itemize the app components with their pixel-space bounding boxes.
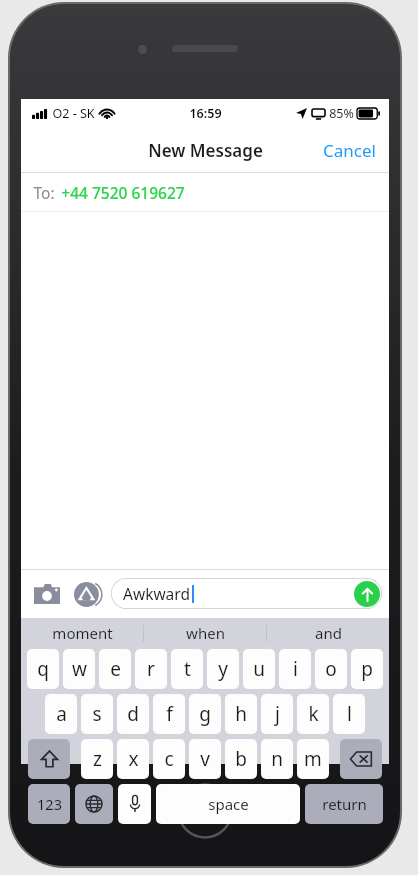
staticText: e	[110, 656, 121, 682]
staticText: l	[347, 701, 352, 727]
staticText: moment	[52, 623, 113, 643]
button[interactable]: w	[63, 649, 95, 689]
button[interactable]: d	[117, 694, 149, 734]
staticText: u	[253, 656, 265, 682]
staticText: Awkward	[123, 583, 190, 604]
button[interactable]: when	[144, 618, 266, 648]
button[interactable]: g	[189, 694, 221, 734]
button[interactable]: Backspace	[340, 739, 382, 779]
staticText: m	[304, 746, 322, 772]
staticText: c	[164, 746, 174, 772]
staticText: New Message	[148, 139, 263, 162]
staticText: d	[127, 701, 139, 727]
button[interactable]: k	[297, 694, 329, 734]
button[interactable]: Shift	[28, 739, 70, 779]
button[interactable]: j	[261, 694, 293, 734]
button[interactable]: space	[156, 784, 300, 824]
button[interactable]: b	[225, 739, 257, 779]
staticText: return	[322, 794, 367, 814]
staticText: 16:59	[189, 105, 222, 122]
staticText: 85%	[329, 105, 354, 122]
staticText: t	[184, 656, 191, 682]
button[interactable]: Emoji / language	[75, 784, 113, 824]
staticText: j	[275, 701, 280, 727]
staticText: g	[199, 701, 211, 727]
staticText: y	[218, 656, 228, 682]
staticText: f	[166, 701, 173, 727]
staticText: O2 - SK	[52, 105, 95, 122]
staticText: space	[208, 794, 249, 814]
staticText: x	[128, 746, 139, 772]
staticText: i	[293, 656, 298, 682]
staticText: 123	[37, 794, 62, 814]
button[interactable]: l	[333, 694, 365, 734]
staticText: To:	[33, 182, 55, 203]
button[interactable]: v	[189, 739, 221, 779]
button[interactable]: Send	[354, 581, 380, 607]
staticText: r	[147, 656, 155, 682]
button[interactable]: Cancel	[310, 129, 389, 172]
button[interactable]: p	[351, 649, 383, 689]
button[interactable]: x	[117, 739, 149, 779]
button[interactable]: App Store	[70, 577, 104, 611]
staticText: n	[271, 746, 283, 772]
button[interactable]: n	[261, 739, 293, 779]
staticText: w	[72, 656, 87, 682]
button[interactable]: To:	[21, 173, 389, 211]
button[interactable]: Dictation	[118, 784, 151, 824]
button[interactable]: o	[315, 649, 347, 689]
button[interactable]: c	[153, 739, 185, 779]
staticText: a	[56, 701, 67, 727]
button[interactable]: f	[153, 694, 185, 734]
staticText: b	[235, 746, 247, 772]
button[interactable]: t	[171, 649, 203, 689]
button[interactable]: h	[225, 694, 257, 734]
button[interactable]: i	[279, 649, 311, 689]
button[interactable]: z	[81, 739, 113, 779]
button[interactable]: m	[297, 739, 329, 779]
button[interactable]: 123	[28, 784, 70, 824]
staticText: z	[93, 746, 102, 772]
button[interactable]: r	[135, 649, 167, 689]
button[interactable]: a	[45, 694, 77, 734]
button[interactable]: y	[207, 649, 239, 689]
staticText: o	[325, 656, 337, 682]
button[interactable]: Awkward	[111, 578, 382, 609]
staticText: h	[235, 701, 247, 727]
staticText: k	[308, 701, 319, 727]
staticText: s	[92, 701, 102, 727]
staticText: p	[361, 656, 373, 682]
staticText: +44 7520 619627	[61, 182, 185, 203]
staticText: and	[315, 623, 342, 643]
button[interactable]: e	[99, 649, 131, 689]
button[interactable]: u	[243, 649, 275, 689]
button[interactable]: moment	[21, 618, 143, 648]
button[interactable]: Camera	[30, 577, 64, 611]
staticText: Cancel	[323, 139, 376, 162]
button[interactable]: s	[81, 694, 113, 734]
other: Home	[177, 783, 233, 839]
staticText: q	[37, 656, 49, 682]
button[interactable]: return	[305, 784, 383, 824]
button[interactable]: and	[267, 618, 389, 648]
staticText: v	[200, 746, 210, 772]
button[interactable]: q	[27, 649, 59, 689]
staticText: when	[186, 623, 225, 643]
